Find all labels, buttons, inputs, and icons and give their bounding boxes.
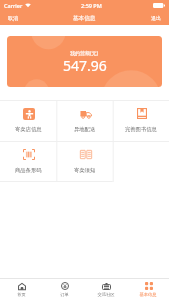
staticText: 取消: [8, 15, 18, 21]
staticText: 我的营额(元): [70, 50, 99, 57]
staticText: 基本信息: [73, 15, 96, 22]
button[interactable]: 寄卖店信息: [0, 100, 57, 141]
button[interactable]: 我的营额(元): [7, 36, 162, 87]
staticText: 订单: [60, 292, 69, 297]
staticText: 交流社区: [97, 292, 115, 297]
staticText: 寄卖店信息: [15, 126, 42, 133]
button[interactable]: Orders: [43, 278, 85, 300]
staticText: 完善图书信息: [125, 126, 157, 133]
button[interactable]: 异地配送: [57, 100, 113, 141]
staticText: 商品条形码: [15, 167, 42, 174]
button[interactable]: Home: [0, 278, 43, 300]
staticText: Carrier: [4, 2, 23, 9]
staticText: 寄卖须知: [74, 167, 96, 174]
button[interactable]: 商品条形码: [0, 141, 57, 182]
button[interactable]: Community: [85, 278, 127, 300]
other: Home: [17, 282, 26, 290]
staticText: 基本信息: [139, 292, 157, 297]
staticText: 547.96: [63, 56, 107, 75]
staticText: 首页: [17, 292, 26, 297]
button[interactable]: Basic info: [127, 278, 169, 300]
button[interactable]: 完善图书信息: [113, 100, 169, 141]
other: Community: [102, 282, 111, 290]
other: Orders: [60, 282, 69, 290]
other: Basic info: [144, 282, 153, 290]
button[interactable]: 寄卖须知: [57, 141, 113, 182]
staticText: 2:59 PM: [81, 2, 102, 9]
staticText: 异地配送: [74, 126, 96, 133]
button[interactable]: 取消: [7, 13, 19, 23]
button[interactable]: 退出: [150, 13, 162, 23]
staticText: 退出: [151, 15, 161, 21]
